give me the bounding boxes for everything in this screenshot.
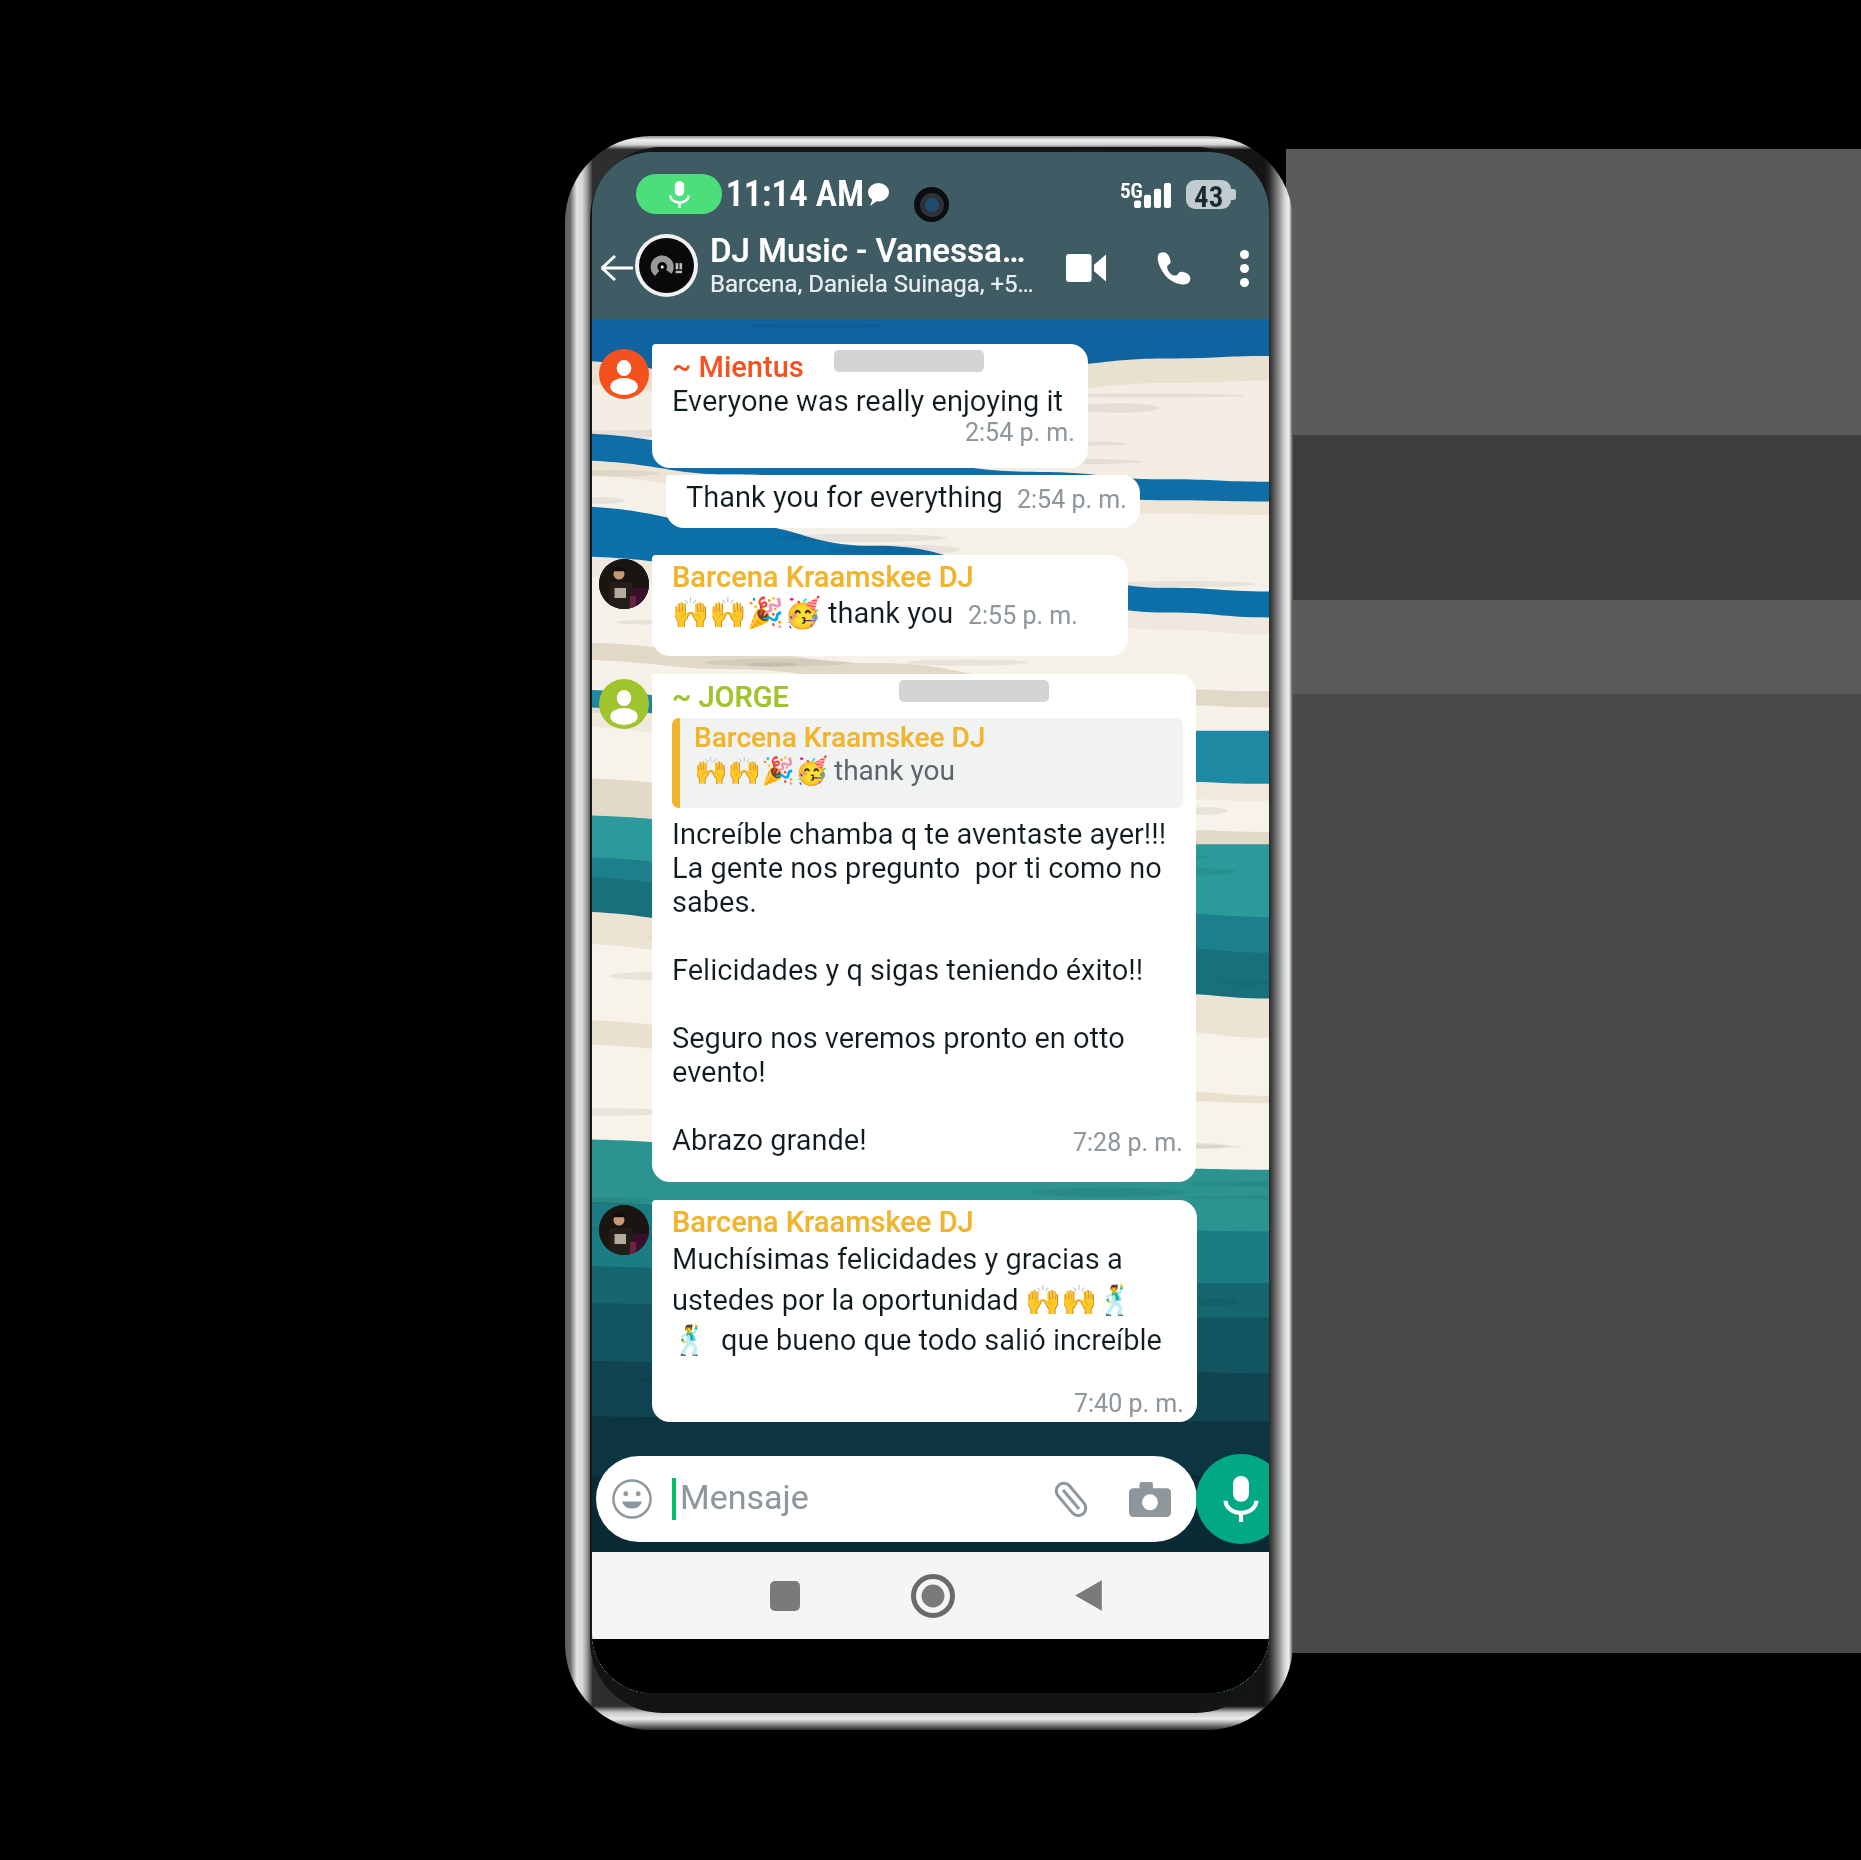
staticText: ~ JORGE — [672, 680, 789, 714]
staticText: Barcena, Daniela Suinaga, +5… — [710, 270, 1034, 298]
button[interactable]: Message — [666, 475, 1140, 528]
staticText: ustedes por la oportunidad — [672, 1283, 1019, 1317]
button[interactable]: Message from Barcena Kraamskee DJ — [652, 1200, 1197, 1422]
staticText: 11:14 AM — [726, 173, 865, 215]
staticText: Barcena Kraamskee DJ — [694, 721, 986, 754]
staticText: 7:40 p. m. — [1074, 1389, 1184, 1418]
staticText: 7:28 p. m. — [1073, 1128, 1183, 1157]
staticText: thank you — [828, 596, 954, 630]
staticText: Barcena Kraamskee DJ — [672, 1205, 974, 1239]
button[interactable]: Back — [592, 218, 642, 318]
staticText: 🙌🙌🎉🥳 — [694, 755, 829, 787]
button[interactable]: Back — [1051, 1552, 1125, 1639]
staticText: 2:54 p. m. — [965, 418, 1075, 447]
button[interactable]: Contact avatar — [599, 349, 649, 399]
staticText: Increíble chamba q te aventaste ayer!!! … — [672, 817, 1167, 1157]
staticText: 🕺 — [672, 1323, 709, 1357]
button[interactable]: Record voice message — [1196, 1454, 1269, 1544]
button[interactable]: Voice call — [1140, 218, 1208, 318]
button[interactable]: Message input field — [596, 1456, 1197, 1542]
staticText: 5G — [1120, 179, 1143, 204]
staticText: 🙌🙌🎉🥳 — [672, 595, 822, 630]
staticText: 2:54 p. m. — [1017, 485, 1127, 514]
staticText: que bueno que todo salió increíble — [721, 1323, 1162, 1357]
button[interactable]: Microphone in use — [636, 174, 722, 214]
button[interactable]: Message from Barcena Kraamskee DJ — [652, 555, 1128, 656]
staticText: Muchísimas felicidades y gracias a — [672, 1242, 1123, 1276]
button[interactable]: Home — [896, 1552, 970, 1639]
staticText: Everyone was really enjoying it — [672, 384, 1063, 418]
staticText: Thank you for everything — [686, 480, 1003, 514]
button[interactable]: Video call — [1054, 218, 1118, 318]
button[interactable]: DJ Music - Vanessa… — [710, 231, 1055, 307]
button[interactable]: Message from Mientus — [652, 344, 1088, 468]
button[interactable]: Group photo — [635, 234, 698, 297]
staticText: thank you — [834, 754, 955, 787]
staticText: 🙌🙌🕺 — [1025, 1283, 1134, 1317]
button[interactable]: Contact avatar — [599, 679, 649, 729]
button[interactable]: More options — [1220, 218, 1268, 318]
staticText: DJ Music - Vanessa… — [710, 231, 1026, 270]
staticText: ~ Mientus — [672, 350, 804, 384]
button[interactable]: Recent apps — [748, 1552, 822, 1639]
button[interactable]: Message from JORGE — [652, 674, 1196, 1182]
staticText: Barcena Kraamskee DJ — [672, 560, 974, 594]
staticText: 2:55 p. m. — [968, 601, 1078, 630]
staticText: Mensaje — [680, 1477, 809, 1517]
staticText: 43 — [1194, 180, 1224, 209]
